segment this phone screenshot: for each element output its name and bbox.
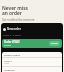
- staticText: Takeaway: [4, 68, 15, 71]
- button[interactable]: Table 2: [2, 57, 62, 66]
- staticText: Accept: [51, 42, 58, 45]
- button[interactable]: Order #1042: [2, 39, 62, 48]
- staticText: Get notified the moment: [2, 18, 35, 22]
- staticText: Table 2: [4, 59, 12, 62]
- staticText: Never miss an order: [2, 5, 28, 16]
- staticText: $24.50: [4, 44, 11, 47]
- staticText: Table 4 · 2 items: [3, 33, 21, 36]
- button[interactable]: Accept: [51, 42, 58, 45]
- staticText: Recent orders: [4, 53, 20, 56]
- button[interactable]: Takeaway: [2, 66, 62, 72]
- staticText: New order: [7, 27, 21, 31]
- button[interactable]: New order: [3, 27, 21, 31]
- staticText: Order #1042: [4, 40, 20, 44]
- staticText: 12:04: [4, 62, 10, 65]
